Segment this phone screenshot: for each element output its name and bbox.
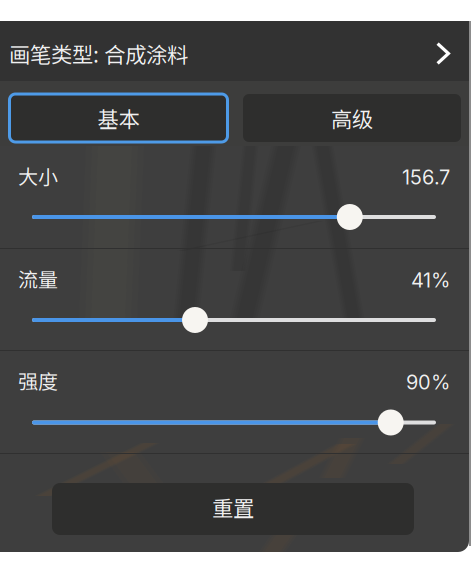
staticText: 高级 xyxy=(331,103,373,133)
staticText: 基本 xyxy=(97,103,139,133)
button[interactable]: 画笔类型: 合成涂料 xyxy=(0,21,469,81)
button[interactable]: 基本 xyxy=(9,94,227,142)
staticText: 强度 xyxy=(18,366,58,395)
staticText: 大小 xyxy=(18,161,58,190)
staticText: 重置 xyxy=(212,492,254,522)
staticText: 90% xyxy=(406,370,450,394)
button[interactable]: 重置 xyxy=(52,483,414,535)
staticText: 画笔类型: 合成涂料 xyxy=(9,38,188,69)
staticText: 156.7 xyxy=(402,165,450,189)
staticText: 流量 xyxy=(18,264,58,293)
button[interactable]: 高级 xyxy=(243,94,461,142)
staticText: 41% xyxy=(411,268,450,292)
